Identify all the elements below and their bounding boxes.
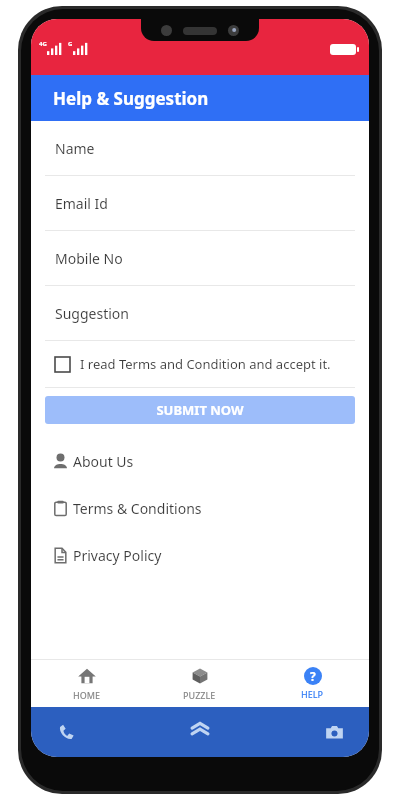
button[interactable]: SUBMIT NOW <box>45 396 355 424</box>
button[interactable]: Terms & Conditions <box>31 485 369 532</box>
staticText: Mobile No <box>55 249 123 268</box>
staticText: Email Id <box>55 194 108 213</box>
staticText: ? <box>310 668 316 684</box>
staticText: Terms & Conditions <box>73 499 202 518</box>
button[interactable]: About Us <box>31 438 369 485</box>
staticText: HELP <box>301 688 324 700</box>
staticText: SUBMIT NOW <box>156 401 244 419</box>
staticText: G <box>68 40 73 48</box>
staticText: HOME <box>73 689 101 701</box>
button[interactable]: PUZZLE <box>143 660 256 707</box>
staticText: I read Terms and Condition and accept it… <box>80 355 331 373</box>
staticText: Privacy Policy <box>73 546 162 565</box>
button[interactable]: Camera <box>319 717 349 747</box>
staticText: Name <box>55 139 95 158</box>
button[interactable]: Unlock <box>183 715 217 749</box>
staticText: PUZZLE <box>183 689 216 701</box>
staticText: 4G <box>39 40 47 48</box>
button[interactable]: HOME <box>31 660 143 707</box>
button[interactable]: Email Id <box>31 176 369 231</box>
button[interactable]: ? <box>256 660 369 707</box>
button[interactable]: Mobile No <box>31 231 369 286</box>
button[interactable]: Privacy Policy <box>31 532 369 579</box>
button[interactable]: Name <box>31 121 369 176</box>
button[interactable]: Phone <box>51 717 81 747</box>
staticText: Help & Suggestion <box>53 87 209 110</box>
staticText: Suggestion <box>55 304 129 323</box>
button[interactable]: Suggestion <box>31 286 369 341</box>
staticText: About Us <box>73 452 134 471</box>
button[interactable]: I read Terms and Condition and accept it… <box>31 341 369 388</box>
